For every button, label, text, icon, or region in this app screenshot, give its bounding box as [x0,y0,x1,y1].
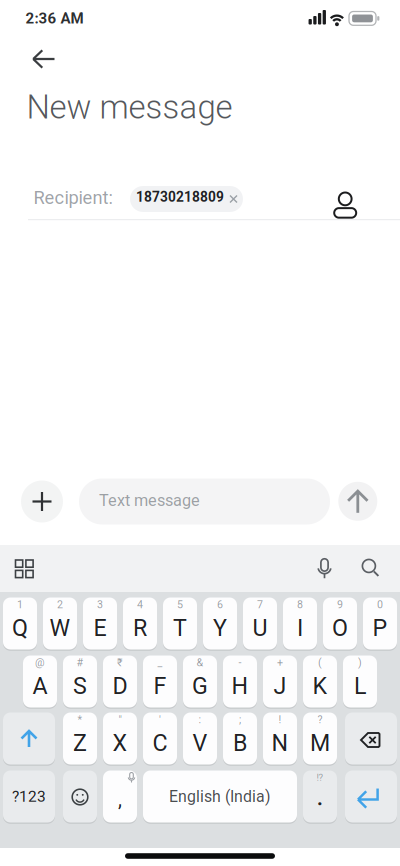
staticText: E [93,614,106,642]
button[interactable]: C [143,712,177,764]
button[interactable]: Voice input [316,558,332,579]
button[interactable]: Y [203,597,237,649]
button[interactable]: P [363,597,397,649]
button[interactable]: Q [3,597,37,649]
staticText: !? [316,772,323,783]
staticText: D [112,672,127,700]
button[interactable]: L [343,655,377,707]
staticText: P [372,614,387,642]
staticText: ' [159,713,161,726]
staticText: 3 [97,598,103,611]
staticText: 0 [377,598,383,611]
staticText: * [77,713,82,726]
button[interactable]: Back [32,49,55,69]
staticText: : [198,713,201,726]
button[interactable]: W [43,597,77,649]
staticText: 7 [257,598,263,611]
staticText: T [173,614,187,642]
button[interactable]: Text message [79,478,330,524]
staticText: 2:36 AM [25,9,83,27]
staticText: M [310,729,330,757]
staticText: ! [278,713,281,726]
button[interactable]: U [243,597,277,649]
button[interactable]: Send [338,482,377,521]
staticText: ; [239,713,241,726]
staticText: 8 [297,598,303,611]
button[interactable]: G [183,655,217,707]
button[interactable]: B [223,712,257,764]
button[interactable]: Keyboard menu [14,559,34,579]
button[interactable]: J [263,655,297,707]
staticText: , [118,788,122,811]
staticText: X [112,729,127,757]
button[interactable]: R [123,597,157,649]
button[interactable]: Emoji [63,770,97,822]
staticText: Q [12,614,28,642]
staticText: Z [73,729,87,757]
staticText: 5 [177,598,183,611]
staticText: & [196,656,203,669]
staticText: _ [157,656,162,669]
staticText: ) [358,656,362,669]
staticText: U [252,614,267,642]
button[interactable]: Shift [3,712,55,764]
button[interactable]: Attach [21,480,63,522]
button[interactable]: H [223,655,257,707]
button[interactable]: V [183,712,217,764]
staticText: . [317,787,323,810]
staticText: J [273,672,286,700]
staticText: B [233,729,247,757]
staticText: 2 [57,598,63,611]
staticText: 1 [17,598,23,611]
button[interactable]: E [83,597,117,649]
button[interactable]: Z [63,712,97,764]
button[interactable]: Delete [345,712,397,764]
staticText: Text message [99,491,200,510]
staticText: F [153,672,166,700]
staticText: English (India) [169,787,271,806]
staticText: L [354,672,366,700]
staticText: 18730218809 [136,189,224,205]
staticText: O [332,614,348,642]
staticText: G [192,672,208,700]
staticText: Recipient: [33,187,112,208]
button[interactable]: Period [303,770,337,822]
button[interactable]: A [23,655,57,707]
staticText: 9 [337,598,343,611]
staticText: S [73,672,87,700]
staticText: N [271,729,288,757]
staticText: ( [318,656,322,669]
button[interactable]: K [303,655,337,707]
button[interactable]: O [323,597,357,649]
button[interactable]: D [103,655,137,707]
staticText: @ [35,656,45,669]
staticText: 6 [217,598,223,611]
button[interactable]: Comma [103,770,137,822]
staticText: " [118,713,121,726]
staticText: ₹ [117,656,123,669]
button[interactable]: F [143,655,177,707]
staticText: ? [317,713,322,726]
button[interactable]: Symbols [3,770,55,822]
button[interactable]: Remove recipient 18730218809 [130,186,243,212]
staticText: V [192,729,207,757]
staticText: K [312,672,327,700]
staticText: New message [26,88,232,127]
button[interactable]: N [263,712,297,764]
staticText: R [133,614,147,642]
button[interactable]: I [283,597,317,649]
staticText: A [32,672,47,700]
button[interactable]: Space [143,770,297,822]
button[interactable]: Choose contact [334,186,356,211]
staticText: Y [213,614,227,642]
button[interactable]: T [163,597,197,649]
staticText: H [231,672,248,700]
staticText: ?123 [12,787,46,805]
button[interactable]: Search [361,559,379,577]
button[interactable]: S [63,655,97,707]
staticText: - [238,656,241,669]
staticText: I [297,614,303,642]
button[interactable]: M [303,712,337,764]
button[interactable]: Return [345,770,397,822]
button[interactable]: X [103,712,137,764]
